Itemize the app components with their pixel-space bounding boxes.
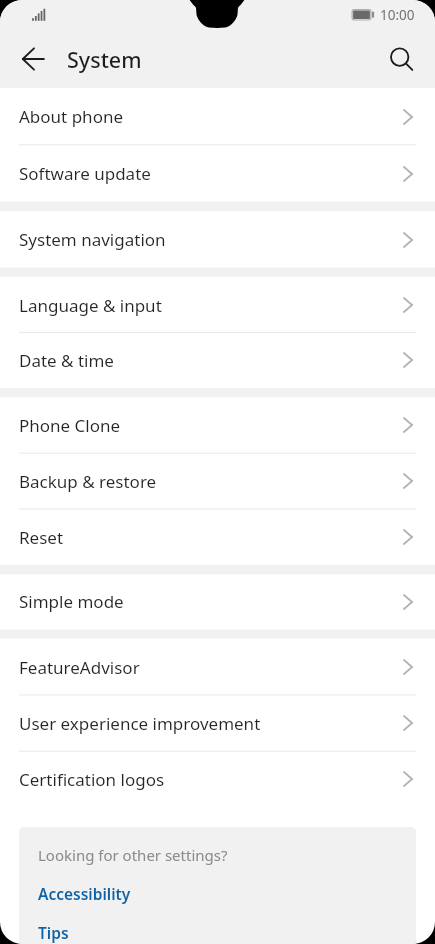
staticText: Software update: [19, 162, 151, 185]
button[interactable]: Phone Clone: [0, 397, 435, 453]
button[interactable]: Date & time: [0, 332, 435, 388]
button[interactable]: FeatureAdvisor: [0, 639, 435, 695]
button[interactable]: Back: [9, 35, 57, 83]
staticText: FeatureAdvisor: [19, 656, 140, 679]
button[interactable]: Software update: [0, 145, 435, 202]
button[interactable]: Search: [376, 35, 424, 83]
staticText: Language & input: [19, 294, 162, 317]
button[interactable]: Language & input: [0, 277, 435, 333]
staticText: Simple mode: [19, 590, 124, 613]
staticText: About phone: [19, 105, 124, 128]
button[interactable]: User experience improvement: [0, 695, 435, 751]
staticText: Date & time: [19, 349, 114, 372]
button[interactable]: Reset: [0, 509, 435, 565]
staticText: Certification logos: [19, 768, 165, 791]
staticText: 10:00: [380, 6, 415, 24]
staticText: Looking for other settings?: [38, 845, 228, 865]
button[interactable]: Simple mode: [0, 574, 435, 629]
staticText: Phone Clone: [19, 414, 121, 437]
button[interactable]: About phone: [0, 88, 435, 145]
staticText: Reset: [19, 526, 64, 549]
button[interactable]: System navigation: [0, 211, 435, 268]
button[interactable]: Tips: [19, 904, 416, 943]
staticText: System: [67, 45, 142, 74]
button[interactable]: Accessibility: [19, 865, 416, 904]
button[interactable]: Certification logos: [0, 751, 435, 807]
button[interactable]: Backup & restore: [0, 453, 435, 509]
staticText: System navigation: [19, 228, 166, 251]
staticText: Backup & restore: [19, 470, 157, 493]
staticText: User experience improvement: [19, 712, 261, 735]
